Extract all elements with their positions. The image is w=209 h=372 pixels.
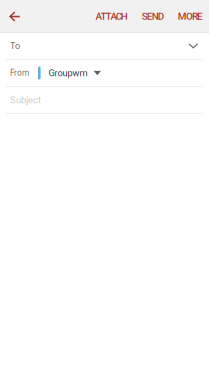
button[interactable]: From xyxy=(0,60,209,86)
button[interactable]: SEND xyxy=(135,0,171,33)
staticText: ATTACH xyxy=(95,11,128,22)
staticText: Groupwm xyxy=(49,67,88,78)
staticText: From xyxy=(10,68,29,78)
staticText: To xyxy=(10,41,20,51)
staticText: SEND xyxy=(142,11,164,22)
button[interactable]: ATTACH xyxy=(88,0,135,33)
button[interactable]: To xyxy=(0,33,209,59)
button[interactable]: Subject xyxy=(0,87,209,113)
staticText: Subject xyxy=(10,94,41,105)
button[interactable]: Back xyxy=(0,0,29,33)
staticText: MORE xyxy=(178,11,203,22)
button[interactable]: MORE xyxy=(171,0,209,33)
